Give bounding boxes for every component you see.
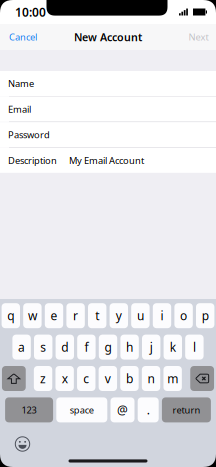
- staticText: My Email Account: [69, 154, 144, 166]
- staticText: o: [180, 308, 187, 324]
- staticText: .: [147, 402, 150, 418]
- staticText: w: [28, 308, 37, 324]
- staticText: e: [50, 308, 57, 324]
- staticText: 10:00: [15, 4, 46, 20]
- staticText: Next: [188, 31, 208, 43]
- button[interactable]: h: [120, 335, 139, 360]
- staticText: @: [117, 402, 128, 418]
- button[interactable]: @: [110, 397, 134, 422]
- button[interactable]: n: [142, 366, 160, 391]
- button[interactable]: o: [174, 303, 193, 328]
- staticText: n: [147, 370, 154, 386]
- staticText: j: [150, 339, 153, 355]
- button[interactable]: r: [66, 303, 85, 328]
- button[interactable]: Email: [0, 97, 216, 122]
- staticText: a: [18, 339, 25, 355]
- staticText: p: [202, 308, 209, 324]
- staticText: u: [137, 308, 144, 324]
- button[interactable]: Emoji: [0, 433, 45, 455]
- button[interactable]: .: [138, 397, 159, 422]
- staticText: v: [105, 370, 111, 386]
- button[interactable]: a: [12, 335, 31, 360]
- staticText: Name: [8, 77, 34, 90]
- staticText: 123: [22, 404, 37, 416]
- button[interactable]: e: [45, 303, 63, 328]
- staticText: y: [116, 308, 122, 324]
- staticText: Password: [8, 128, 50, 141]
- button[interactable]: v: [99, 366, 117, 391]
- button[interactable]: z: [34, 366, 52, 391]
- staticText: c: [83, 370, 89, 386]
- button[interactable]: Shift: [2, 366, 26, 391]
- button[interactable]: 123: [5, 397, 53, 422]
- staticText: Email: [8, 103, 31, 115]
- button[interactable]: p: [196, 303, 214, 328]
- button[interactable]: Description: [0, 148, 216, 173]
- staticText: d: [61, 339, 68, 355]
- staticText: t: [95, 308, 99, 324]
- staticText: z: [40, 370, 46, 386]
- button[interactable]: Name: [0, 71, 216, 96]
- staticText: m: [167, 370, 178, 386]
- button[interactable]: space: [56, 397, 107, 422]
- button[interactable]: k: [164, 335, 182, 360]
- staticText: space: [70, 404, 94, 416]
- staticText: q: [7, 308, 14, 324]
- button[interactable]: l: [185, 335, 204, 360]
- staticText: l: [193, 339, 196, 355]
- button[interactable]: d: [56, 335, 74, 360]
- button[interactable]: i: [153, 303, 171, 328]
- button[interactable]: q: [2, 303, 20, 328]
- button[interactable]: Delete: [190, 366, 214, 391]
- button[interactable]: x: [55, 366, 74, 391]
- button[interactable]: f: [77, 335, 96, 360]
- button[interactable]: Next: [179, 24, 216, 50]
- staticText: Cancel: [9, 31, 37, 43]
- button[interactable]: y: [110, 303, 128, 328]
- button[interactable]: return: [162, 397, 211, 422]
- staticText: h: [126, 339, 133, 355]
- staticText: r: [73, 308, 78, 324]
- staticText: f: [84, 339, 88, 355]
- button[interactable]: b: [120, 366, 139, 391]
- button[interactable]: Password: [0, 122, 216, 147]
- staticText: s: [40, 339, 46, 355]
- button[interactable]: Cancel: [0, 24, 46, 50]
- button[interactable]: g: [99, 335, 117, 360]
- button[interactable]: s: [34, 335, 52, 360]
- staticText: New Account: [74, 30, 142, 44]
- staticText: b: [126, 370, 133, 386]
- staticText: return: [172, 404, 200, 416]
- button[interactable]: t: [88, 303, 106, 328]
- staticText: Description: [8, 154, 57, 166]
- staticText: x: [62, 370, 68, 386]
- staticText: i: [160, 308, 163, 324]
- button[interactable]: u: [131, 303, 150, 328]
- staticText: g: [104, 339, 111, 355]
- button[interactable]: c: [77, 366, 95, 391]
- staticText: k: [170, 339, 176, 355]
- button[interactable]: w: [23, 303, 42, 328]
- button[interactable]: m: [163, 366, 182, 391]
- button[interactable]: j: [142, 335, 160, 360]
